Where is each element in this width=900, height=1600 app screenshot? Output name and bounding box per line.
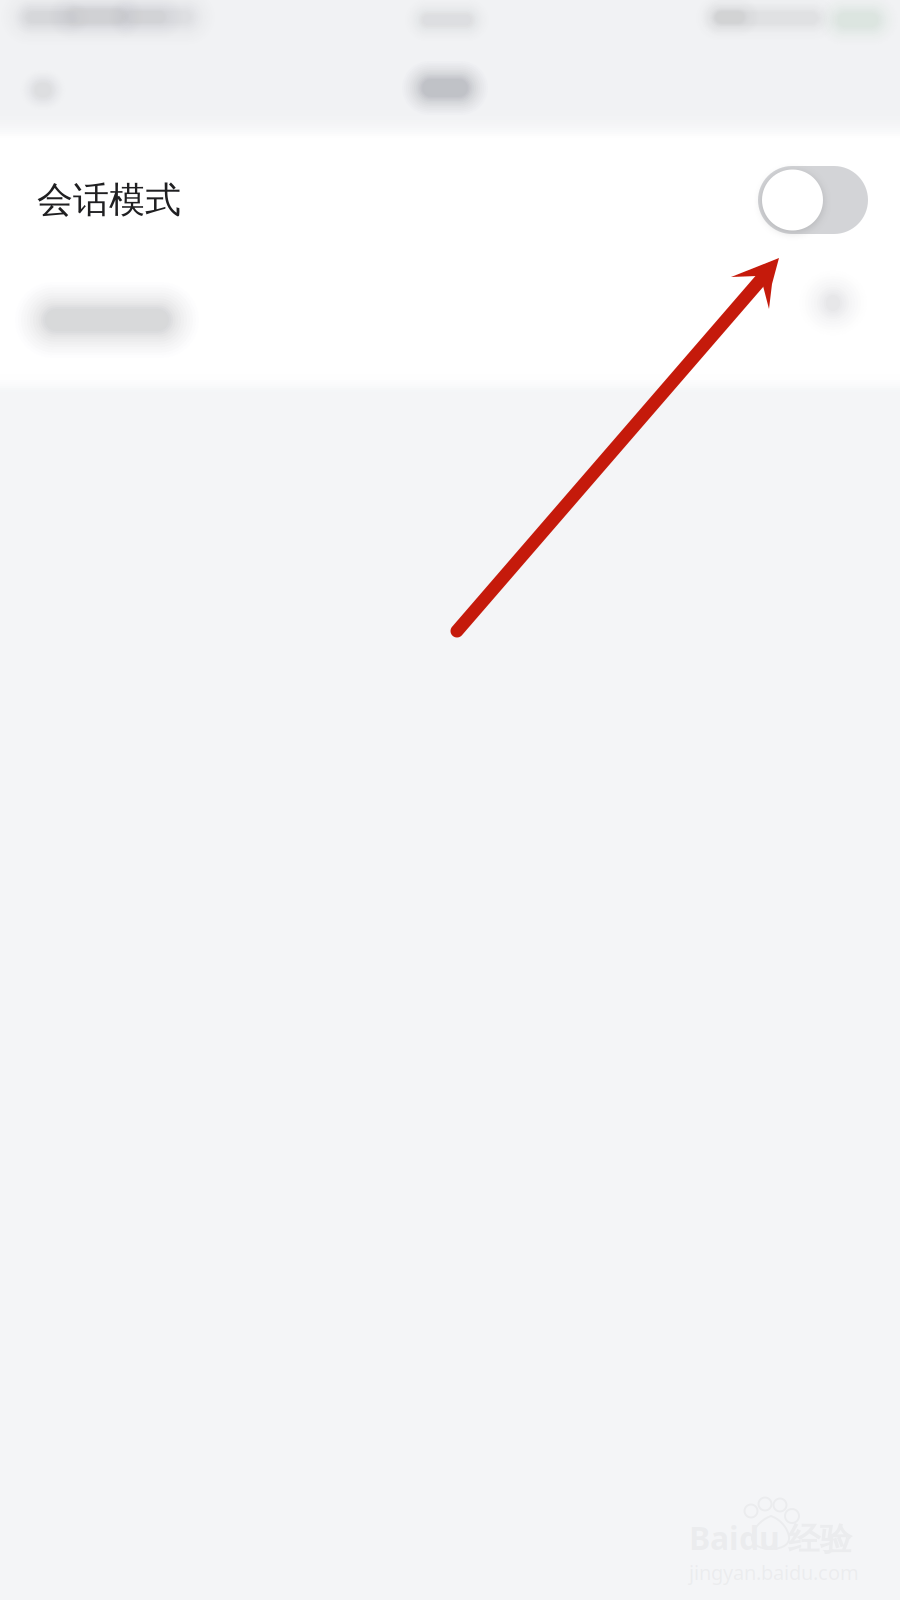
button[interactable]: 会话模式	[0, 138, 900, 262]
staticText: 会话模式	[37, 178, 181, 222]
button[interactable]: 设置项	[0, 262, 900, 392]
button[interactable]: 会话模式开关	[758, 166, 868, 234]
staticText: Baidu 经验	[689, 1516, 852, 1559]
